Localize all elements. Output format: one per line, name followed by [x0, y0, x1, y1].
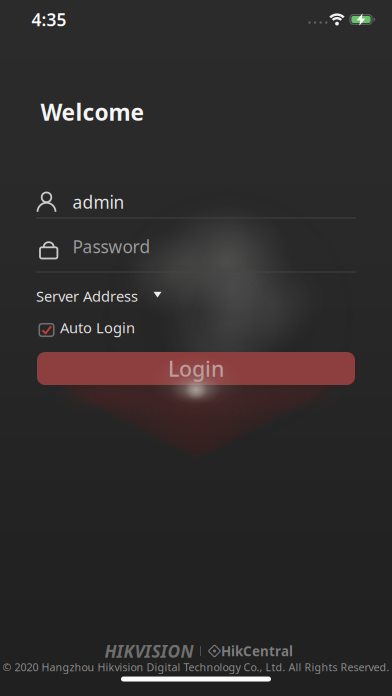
staticText: HikCentral: [221, 642, 293, 660]
button[interactable]: Server Address: [0, 283, 392, 309]
staticText: HIKVISION: [104, 639, 193, 662]
button[interactable]: Auto Login: [0, 317, 392, 343]
staticText: Login: [168, 354, 224, 383]
staticText: © 2020 Hangzhou Hikvision Digital Techno…: [2, 660, 389, 674]
staticText: admin: [72, 190, 124, 213]
button[interactable]: admin: [0, 180, 392, 218]
button[interactable]: Password: [0, 234, 392, 272]
staticText: 4:35: [31, 8, 66, 31]
staticText: Welcome: [40, 97, 144, 127]
staticText: Auto Login: [60, 318, 135, 337]
staticText: Server Address: [36, 286, 138, 306]
button[interactable]: Login: [37, 352, 355, 385]
staticText: Password: [72, 235, 150, 258]
